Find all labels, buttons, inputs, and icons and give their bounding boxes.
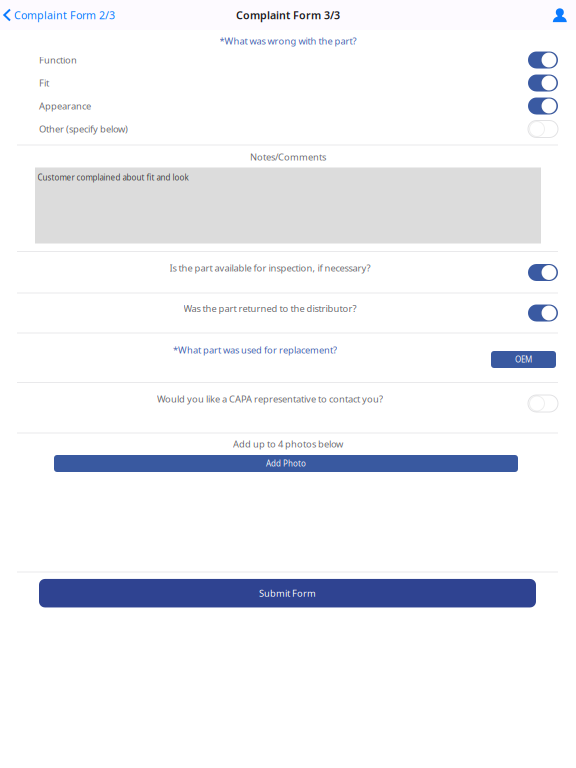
staticText: Other (specify below) — [39, 123, 128, 135]
button[interactable]: Appearance — [0, 94, 576, 117]
button[interactable]: Fit — [0, 71, 576, 94]
button[interactable]: Would you like a CAPA representative to … — [0, 382, 576, 433]
button[interactable]: Submit Form — [39, 579, 536, 607]
staticText: Add Photo — [266, 458, 306, 469]
button[interactable]: Is the part available for inspection, if… — [0, 251, 576, 293]
button[interactable]: OEM — [491, 351, 556, 368]
staticText: *What part was used for replacement? — [173, 344, 337, 356]
button[interactable]: Other (specify below) — [0, 117, 576, 140]
staticText: Submit Form — [259, 587, 316, 599]
staticText: Function — [39, 54, 77, 66]
button[interactable]: Complaint Form 2/3 — [0, 0, 123, 30]
button[interactable]: Account — [546, 0, 574, 30]
staticText: Appearance — [39, 100, 91, 112]
staticText: Is the part available for inspection, if… — [169, 262, 370, 274]
staticText: Complaint Form 3/3 — [236, 8, 340, 22]
staticText: *What was wrong with the part? — [219, 35, 356, 47]
staticText: OEM — [515, 354, 532, 365]
button[interactable]: Was the part returned to the distributor… — [0, 293, 576, 333]
staticText: Customer complained about fit and look — [37, 172, 188, 183]
staticText: Notes/Comments — [250, 151, 326, 163]
staticText: Was the part returned to the distributor… — [183, 302, 356, 315]
staticText: Would you like a CAPA representative to … — [157, 393, 383, 405]
button[interactable]: Function — [0, 48, 576, 71]
staticText: Complaint Form 2/3 — [14, 8, 115, 22]
staticText: Add up to 4 photos below — [233, 438, 343, 450]
staticText: Fit — [39, 77, 49, 89]
button[interactable]: Add Photo — [54, 455, 518, 472]
